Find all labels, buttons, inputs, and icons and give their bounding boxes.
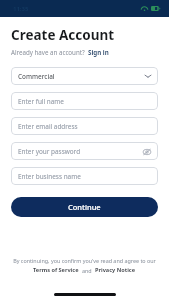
staticText: Enter business name (18, 172, 151, 181)
staticText: Already have an account? (11, 48, 85, 56)
button[interactable]: Enter full name (11, 92, 158, 110)
button[interactable]: Enter your password (11, 142, 158, 160)
staticText: By continuing, you confirm you've read a… (13, 257, 156, 264)
button[interactable]: Commercial (11, 67, 158, 85)
button[interactable]: Sign in (88, 48, 109, 56)
staticText: and (82, 267, 92, 274)
button[interactable]: Privacy Notice (95, 266, 136, 274)
button[interactable]: Enter business name (11, 167, 158, 185)
staticText: Commercial (18, 72, 145, 81)
staticText: Continue (68, 202, 101, 212)
staticText: Sign in (88, 48, 109, 56)
staticText: Enter your password (18, 147, 142, 156)
button[interactable]: Continue (11, 197, 158, 217)
button[interactable]: Terms of Service (33, 266, 79, 274)
staticText: Privacy Notice (95, 266, 136, 274)
staticText: Terms of Service (33, 266, 79, 274)
staticText: Enter full name (18, 97, 151, 106)
button[interactable]: Enter email address (11, 117, 158, 135)
staticText: 11:35 (13, 5, 29, 13)
button[interactable]: Show password (142, 147, 151, 156)
staticText: Enter email address (18, 122, 151, 131)
staticText: Create Account (11, 26, 115, 44)
